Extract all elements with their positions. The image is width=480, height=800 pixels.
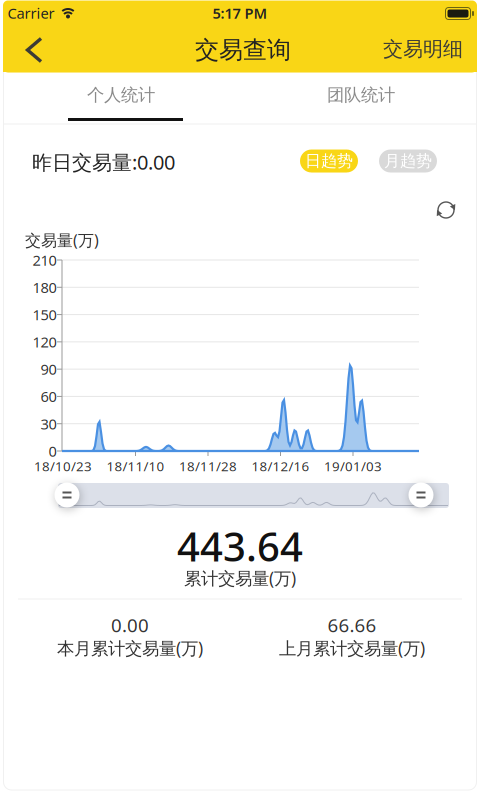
button[interactable]: 月趋势 — [379, 149, 437, 172]
staticText: 交易明细 — [383, 37, 463, 61]
staticText: 90 — [40, 359, 56, 379]
staticText: Carrier — [7, 3, 54, 23]
staticText: 月趋势 — [384, 151, 432, 171]
staticText: 18/10/23 — [34, 457, 92, 475]
staticText: 日趋势 — [305, 151, 353, 171]
staticText: 上月累计交易量(万) — [279, 636, 425, 659]
button[interactable]: 日趋势 — [300, 149, 358, 172]
staticText: 本月累计交易量(万) — [57, 636, 203, 659]
staticText: 18/12/16 — [251, 457, 309, 475]
staticText: 5:17 PM — [212, 3, 267, 23]
staticText: 19/01/03 — [324, 457, 382, 475]
staticText: 150 — [32, 305, 56, 324]
staticText: 团队统计 — [327, 84, 395, 106]
staticText: 交易量(万) — [25, 229, 99, 251]
staticText: 0.00 — [111, 613, 149, 637]
button[interactable]: Refresh — [431, 195, 461, 225]
staticText: 交易查询 — [195, 35, 291, 65]
button[interactable]: 交易明细 — [383, 37, 463, 61]
staticText: 443.64 — [177, 519, 303, 572]
staticText: 66.66 — [327, 613, 376, 637]
staticText: 累计交易量(万) — [184, 566, 296, 589]
staticText: 昨日交易量:0.00 — [32, 149, 175, 175]
staticText: 18/11/28 — [179, 457, 237, 475]
button[interactable]: Drag handle — [407, 481, 434, 508]
staticText: 30 — [40, 414, 56, 433]
staticText: 120 — [32, 332, 56, 352]
staticText: 个人统计 — [87, 84, 155, 106]
button[interactable]: Back — [12, 28, 56, 72]
staticText: 60 — [40, 387, 56, 406]
staticText: 180 — [32, 277, 56, 297]
button[interactable]: 团队统计 — [242, 70, 479, 120]
staticText: 210 — [32, 250, 56, 270]
button[interactable]: 个人统计 — [2, 70, 239, 120]
staticText: 0 — [48, 441, 56, 461]
button[interactable]: Drag handle — [53, 481, 80, 508]
staticText: 18/11/10 — [106, 457, 164, 475]
